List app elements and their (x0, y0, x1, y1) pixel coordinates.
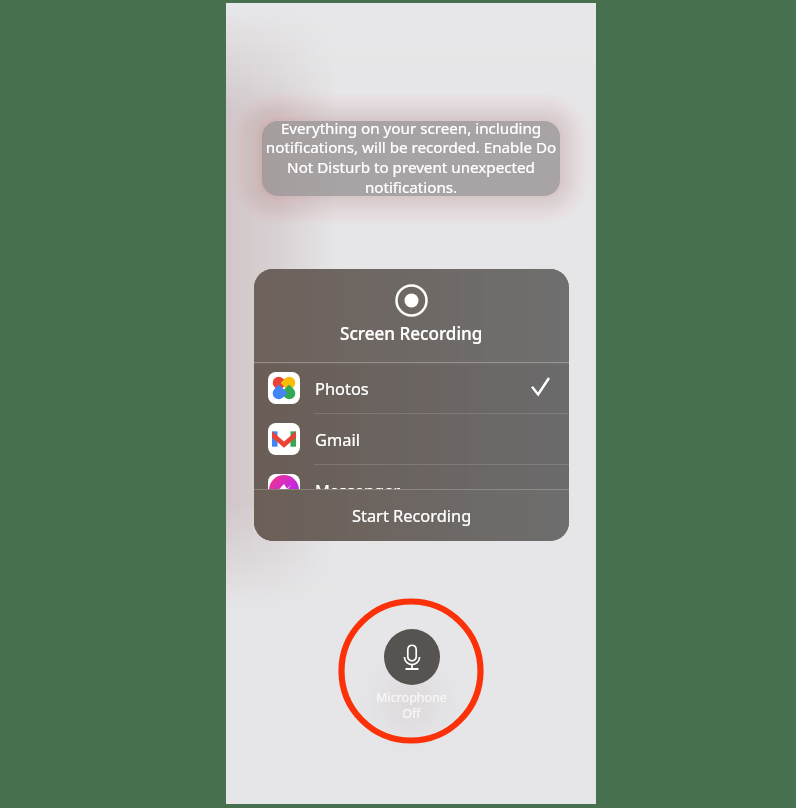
staticText: Gmail (315, 428, 360, 450)
button[interactable]: Messenger (254, 465, 569, 515)
staticText: Everything on your screen, including not… (262, 121, 560, 193)
button[interactable]: Microphone Off (376, 629, 447, 721)
button[interactable]: Start Recording (254, 489, 569, 541)
staticText: Screen Recording (340, 322, 483, 345)
button[interactable]: Gmail (254, 414, 569, 464)
staticText: Messenger (315, 479, 401, 501)
staticText: Photos (315, 377, 369, 399)
staticText: Start Recording (352, 504, 472, 526)
button[interactable]: Photos (254, 363, 569, 413)
staticText: Microphone Off (376, 689, 447, 721)
